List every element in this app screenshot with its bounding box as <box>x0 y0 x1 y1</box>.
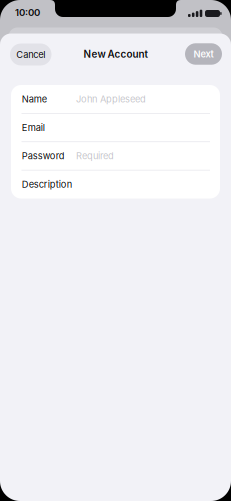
staticText: Required <box>76 150 114 162</box>
staticText: New Account <box>83 48 147 60</box>
staticText: Description <box>22 179 72 190</box>
staticText: John Appleseed <box>76 93 146 105</box>
staticText: Email <box>22 122 45 133</box>
button[interactable]: Description <box>11 170 220 198</box>
button[interactable]: Cancel <box>10 43 51 65</box>
staticText: Next <box>193 48 213 60</box>
button[interactable]: Name <box>11 85 220 113</box>
button[interactable]: Password <box>11 142 220 170</box>
button[interactable]: Next <box>185 43 222 65</box>
staticText: Name <box>22 93 47 105</box>
staticText: Cancel <box>16 49 45 60</box>
button[interactable]: Email <box>11 114 220 141</box>
staticText: 10:00 <box>15 7 40 18</box>
staticText: Password <box>22 150 65 162</box>
